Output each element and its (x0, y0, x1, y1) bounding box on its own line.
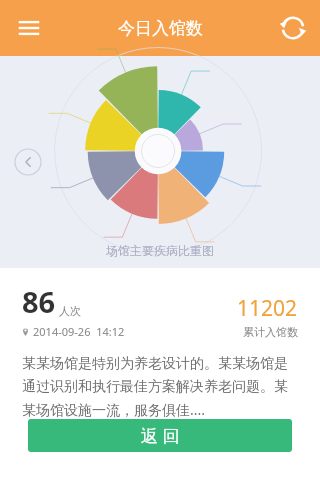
staticText: 11202 (237, 294, 298, 323)
button[interactable]: 返 回 (28, 419, 292, 452)
button[interactable]: Menu (10, 9, 48, 47)
staticText: 86 (22, 282, 56, 321)
staticText: 今日入馆数 (118, 18, 203, 39)
staticText: 返 回 (141, 424, 180, 447)
staticText: 场馆主要疾病比重图 (106, 243, 214, 258)
button[interactable]: Refresh (276, 11, 310, 45)
staticText: 人次 (59, 304, 81, 318)
staticText: 某某场馆是特别为养老设计的。某某场馆是通过识别和执行最佳方案解决养老问题。某某场… (22, 355, 298, 419)
staticText: 2014-09-26 14:12 (33, 324, 125, 339)
staticText: 累计入馆数 (243, 325, 298, 339)
button[interactable]: Previous (14, 148, 42, 176)
